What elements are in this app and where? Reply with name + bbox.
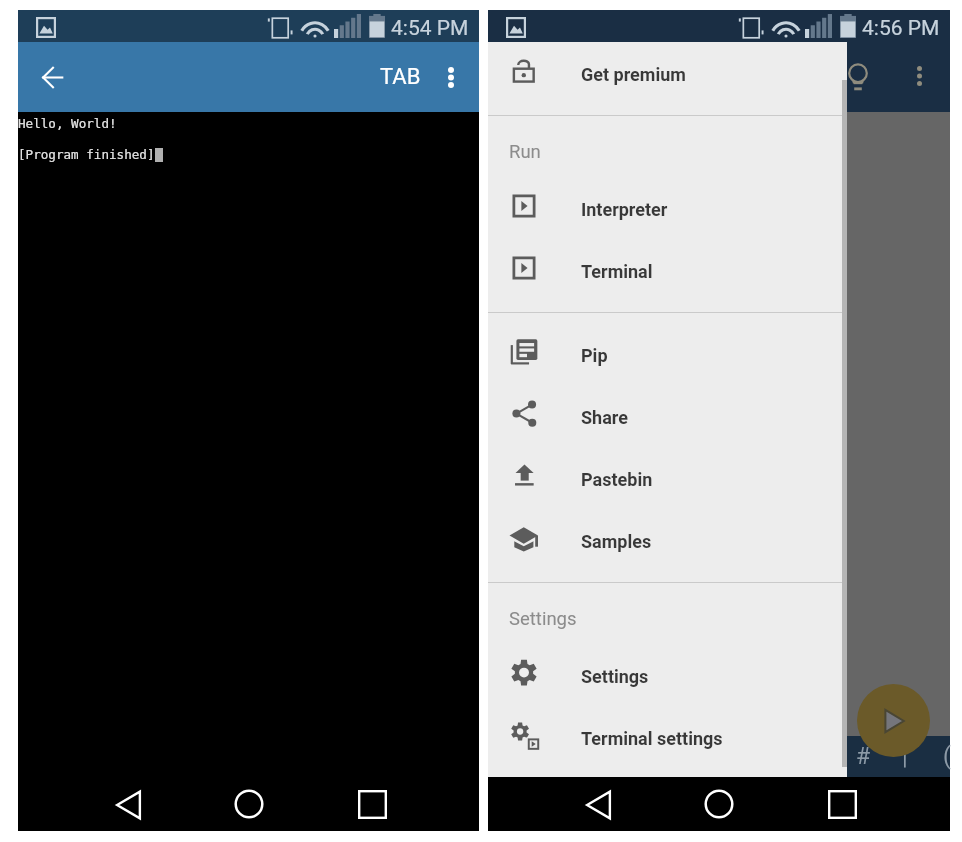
staticText: Hello, World! xyxy=(18,116,117,131)
staticText: " xyxy=(649,743,657,770)
button[interactable]: Terminal xyxy=(488,240,847,302)
button[interactable]: Pip xyxy=(488,324,847,386)
staticText: Pip xyxy=(581,345,608,366)
button[interactable]: | xyxy=(884,736,926,777)
button[interactable]: # xyxy=(842,736,884,777)
staticText: ~ xyxy=(519,743,535,770)
staticText: Samples xyxy=(581,531,652,552)
staticText: # xyxy=(856,743,871,770)
button[interactable]: Terminal settings xyxy=(488,707,847,769)
staticText: ' xyxy=(693,743,698,770)
staticText: [Program finished] xyxy=(18,147,155,162)
button[interactable]: ( xyxy=(926,736,962,777)
button[interactable]: " xyxy=(632,736,674,777)
button[interactable]: Recents xyxy=(335,777,409,831)
button[interactable]: Share xyxy=(488,386,847,448)
staticText: Settings xyxy=(581,666,649,687)
button[interactable]: Run xyxy=(857,684,930,757)
staticText: \ xyxy=(606,743,616,770)
button[interactable]: - xyxy=(716,736,758,777)
button[interactable]: More options xyxy=(896,53,942,99)
button[interactable]: ' xyxy=(674,736,716,777)
button[interactable]: Get premium xyxy=(488,43,847,105)
staticText: Run xyxy=(509,141,541,163)
staticText: 4:56 PM xyxy=(862,16,940,41)
staticText: Get premium xyxy=(581,64,686,85)
staticText: ( xyxy=(943,743,951,770)
staticText: Share xyxy=(581,407,628,428)
staticText: Pastebin xyxy=(581,469,653,490)
button[interactable]: Recents xyxy=(805,777,879,831)
button[interactable]: Pastebin xyxy=(488,448,847,510)
button[interactable]: Hint xyxy=(835,54,881,100)
button[interactable]: Home xyxy=(682,777,756,831)
button[interactable]: Back xyxy=(30,54,76,100)
button[interactable]: Samples xyxy=(488,510,847,572)
button[interactable]: \ xyxy=(590,736,632,777)
staticText: 4:54 PM xyxy=(391,16,469,41)
button[interactable]: Settings xyxy=(488,645,847,707)
button[interactable]: · xyxy=(548,736,590,777)
staticText: Interpreter xyxy=(581,199,668,220)
staticText: Terminal xyxy=(581,261,653,282)
button[interactable]: Home xyxy=(212,777,286,831)
staticText: Terminal settings xyxy=(581,728,723,749)
button[interactable]: Back xyxy=(561,777,635,831)
button[interactable]: More options xyxy=(428,54,474,100)
staticText: | xyxy=(902,743,908,770)
button[interactable]: Back xyxy=(91,777,165,831)
button[interactable]: TAB xyxy=(369,42,428,112)
staticText: Settings xyxy=(509,608,577,630)
button[interactable]: ~ xyxy=(506,736,548,777)
staticText: TAB xyxy=(380,64,421,90)
button[interactable]: Interpreter xyxy=(488,178,847,240)
